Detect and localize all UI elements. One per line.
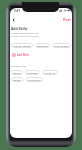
button[interactable]: Post bbox=[60, 15, 72, 24]
staticText: Suggested skills bbox=[11, 65, 27, 68]
button[interactable]: Visual Art bbox=[42, 70, 58, 75]
button[interactable]: Back bbox=[10, 16, 17, 23]
button[interactable]: Add Skills bbox=[12, 53, 30, 57]
staticText: Add Skills bbox=[11, 26, 28, 31]
button[interactable]: Photoshop bbox=[26, 77, 43, 82]
staticText: Visual Art bbox=[44, 71, 56, 74]
staticText: Post bbox=[63, 17, 71, 22]
button[interactable]: Dance bbox=[11, 70, 23, 75]
staticText: Logo Design bbox=[54, 44, 69, 47]
staticText: Branding bbox=[37, 44, 48, 47]
button[interactable]: InDesign bbox=[25, 70, 40, 75]
staticText: Selecting skills helps you find bbox=[11, 32, 39, 35]
staticText: Graphic Design bbox=[13, 44, 31, 47]
staticText: the right members for project bbox=[11, 35, 39, 38]
button[interactable]: Branding bbox=[35, 43, 50, 48]
staticText: 9:41 bbox=[14, 9, 20, 13]
staticText: Dance bbox=[13, 71, 21, 74]
button[interactable]: Logo Design bbox=[52, 43, 71, 48]
button[interactable]: Design bbox=[11, 77, 24, 82]
staticText: Add Skills bbox=[17, 53, 30, 57]
staticText: Design bbox=[13, 78, 22, 81]
staticText: InDesign bbox=[27, 71, 38, 74]
staticText: Photoshop bbox=[28, 78, 41, 81]
button[interactable]: Graphic Design bbox=[11, 43, 33, 48]
